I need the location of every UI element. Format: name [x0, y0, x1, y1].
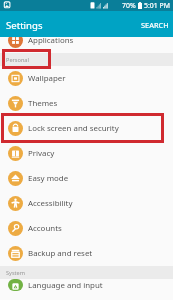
button[interactable]: Themes — [0, 91, 173, 116]
staticText: Wallpaper — [28, 73, 66, 84]
staticText: Lock screen and security — [28, 123, 119, 134]
button[interactable]: Accounts — [0, 216, 173, 241]
staticText: SEARCH — [141, 20, 169, 30]
button[interactable]: Language and input — [0, 279, 173, 291]
staticText: System — [6, 269, 26, 277]
staticText: Personal — [6, 56, 29, 64]
staticText: Applications — [28, 35, 74, 46]
staticText: 5:01 PM — [144, 1, 170, 10]
staticText: Settings — [6, 19, 43, 32]
button[interactable]: Accessibility — [0, 191, 173, 216]
staticText: Backup and reset — [28, 248, 93, 259]
button[interactable]: Applications — [0, 28, 173, 53]
button[interactable]: Privacy — [0, 141, 173, 166]
button[interactable]: Backup and reset — [0, 241, 173, 266]
staticText: Privacy — [28, 148, 55, 159]
staticText: Themes — [28, 98, 58, 109]
button[interactable]: SEARCH — [135, 13, 173, 35]
button[interactable]: Wallpaper — [0, 66, 173, 91]
button[interactable]: Easy mode — [0, 166, 173, 191]
staticText: Accounts — [28, 223, 62, 234]
staticText: Accessibility — [28, 198, 73, 209]
staticText: 70% — [122, 1, 136, 10]
staticText: Easy mode — [28, 173, 69, 184]
button[interactable]: Lock screen and security — [0, 116, 173, 141]
staticText: Language and input — [28, 280, 103, 291]
